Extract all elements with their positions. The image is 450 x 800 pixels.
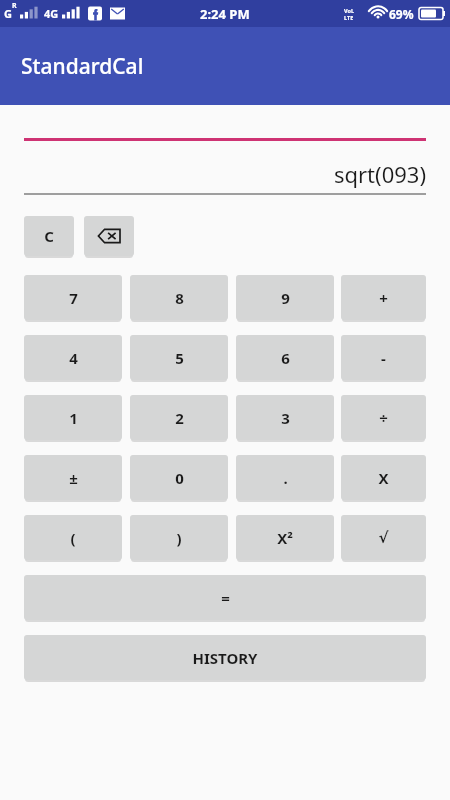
button[interactable]: .	[236, 455, 334, 500]
button[interactable]: 5	[130, 335, 228, 380]
staticText: 3	[281, 408, 290, 428]
button[interactable]: =	[24, 575, 426, 620]
button[interactable]: 8	[130, 275, 228, 320]
staticText: .	[283, 468, 288, 488]
staticText: 7	[69, 288, 78, 308]
staticText: √	[378, 529, 389, 546]
staticText: X²	[277, 528, 293, 548]
staticText: -	[381, 348, 386, 368]
button[interactable]: +	[341, 275, 426, 320]
staticText: VoL	[344, 7, 354, 14]
button[interactable]: )	[130, 515, 228, 560]
staticText: =	[221, 588, 230, 608]
button[interactable]: 7	[24, 275, 122, 320]
staticText: 6	[281, 348, 290, 368]
staticText: 4	[69, 348, 78, 368]
staticText: 4G	[44, 6, 59, 21]
staticText: C	[44, 226, 54, 246]
button[interactable]	[84, 216, 134, 256]
button[interactable]: 1	[24, 395, 122, 440]
staticText: HISTORY	[192, 648, 258, 668]
button[interactable]: 9	[236, 275, 334, 320]
staticText: G	[4, 6, 12, 21]
staticText: (	[70, 528, 76, 548]
staticText: LTE	[344, 14, 354, 21]
staticText: ÷	[379, 408, 388, 428]
button[interactable]: (	[24, 515, 122, 560]
button[interactable]: ÷	[341, 395, 426, 440]
staticText: 2:24 PM	[200, 5, 250, 23]
button[interactable]: 6	[236, 335, 334, 380]
button[interactable]: X	[341, 455, 426, 500]
staticText: )	[176, 528, 182, 548]
staticText: sqrt(093)	[333, 159, 426, 189]
staticText: ±	[69, 468, 78, 488]
other: Backspace	[84, 216, 134, 258]
staticText: R	[12, 1, 17, 11]
staticText: 2	[175, 408, 184, 428]
staticText: 0	[175, 468, 184, 488]
staticText: 1	[69, 408, 78, 428]
button[interactable]: sqrt(093)	[24, 141, 426, 195]
staticText: 8	[175, 288, 184, 308]
staticText: +	[379, 288, 388, 308]
staticText: X	[378, 468, 389, 488]
button[interactable]: 3	[236, 395, 334, 440]
button[interactable]: ±	[24, 455, 122, 500]
staticText: StandardCal	[21, 52, 144, 81]
button[interactable]: 0	[130, 455, 228, 500]
button[interactable]: 2	[130, 395, 228, 440]
staticText: 69%	[389, 6, 414, 22]
button[interactable]: C	[24, 216, 74, 256]
button[interactable]: -	[341, 335, 426, 380]
button[interactable]: HISTORY	[24, 635, 426, 680]
staticText: 5	[175, 348, 184, 368]
button[interactable]: √	[341, 515, 426, 560]
button[interactable]: 4	[24, 335, 122, 380]
button[interactable]: X²	[236, 515, 334, 560]
staticText: 9	[281, 288, 290, 308]
